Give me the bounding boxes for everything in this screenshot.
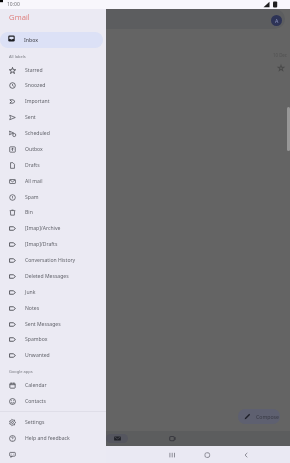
staticText: Settings bbox=[25, 419, 45, 426]
button[interactable]: Calendar bbox=[0, 377, 106, 393]
button[interactable]: All mail bbox=[0, 173, 106, 189]
staticText: Sent bbox=[25, 114, 36, 121]
button[interactable]: Recents bbox=[167, 450, 177, 460]
button[interactable]: Junk bbox=[0, 284, 106, 300]
button[interactable]: Snoozed bbox=[0, 77, 106, 93]
staticText: Contacts bbox=[25, 398, 46, 405]
button[interactable]: Starred bbox=[0, 62, 106, 78]
staticText: Compose bbox=[256, 413, 280, 420]
button[interactable]: Mail bbox=[106, 434, 128, 443]
button[interactable]: Spambox bbox=[0, 331, 106, 347]
button[interactable]: Search in mail bbox=[6, 9, 285, 29]
button[interactable]: Compose bbox=[238, 409, 280, 424]
staticText: All mail bbox=[25, 178, 43, 185]
button[interactable]: Sent Messages bbox=[0, 316, 106, 332]
staticText: Google apps bbox=[9, 369, 33, 374]
button[interactable]: Bin bbox=[0, 204, 106, 220]
button[interactable]: Important bbox=[0, 93, 106, 109]
button[interactable]: Settings bbox=[0, 414, 106, 430]
staticText: Spam bbox=[25, 194, 39, 201]
button[interactable]: Conversation History bbox=[0, 252, 106, 268]
button[interactable]: Home bbox=[202, 450, 212, 460]
staticText: A bbox=[275, 17, 279, 24]
button[interactable]: Inbox bbox=[0, 32, 103, 48]
staticText: Gmail bbox=[9, 12, 30, 23]
staticText: Sent Messages bbox=[25, 321, 61, 328]
staticText: Drafts bbox=[25, 162, 40, 169]
button[interactable]: Unwanted bbox=[0, 347, 106, 363]
button[interactable]: Contacts bbox=[0, 393, 106, 409]
button[interactable]: Drafts bbox=[0, 157, 106, 173]
staticText: [Imap]/Drafts bbox=[25, 241, 58, 248]
staticText: Important bbox=[25, 98, 50, 105]
staticText: Junk bbox=[25, 289, 36, 296]
button[interactable]: Account bbox=[271, 15, 282, 26]
button[interactable]: Send feedback bbox=[0, 446, 106, 462]
staticText: 10:00 bbox=[7, 1, 20, 8]
staticText: Starred bbox=[25, 67, 43, 74]
staticText: Calendar bbox=[25, 382, 47, 389]
staticText: Inbox bbox=[24, 37, 38, 44]
staticText: Notes bbox=[25, 305, 40, 312]
button[interactable]: Deleted Messages bbox=[0, 268, 106, 284]
button[interactable]: Spam bbox=[0, 189, 106, 205]
button[interactable]: Help and feedback bbox=[0, 430, 106, 446]
staticText: Spambox bbox=[25, 336, 48, 343]
staticText: Help and feedback bbox=[25, 435, 70, 442]
button[interactable]: [Imap]/Archive bbox=[0, 220, 106, 236]
button[interactable]: Meet bbox=[161, 434, 183, 443]
staticText: Conversation History bbox=[25, 257, 76, 264]
button[interactable]: Notes bbox=[0, 300, 106, 316]
staticText: [Imap]/Archive bbox=[25, 225, 61, 232]
button[interactable]: Back bbox=[241, 450, 251, 460]
staticText: Deleted Messages bbox=[25, 273, 69, 280]
staticText: Bin bbox=[25, 209, 33, 216]
staticText: All labels bbox=[9, 54, 26, 59]
button[interactable]: Outbox bbox=[0, 141, 106, 157]
staticText: Scheduled bbox=[25, 130, 50, 137]
staticText: Unwanted bbox=[25, 352, 50, 359]
staticText: 10 Dec bbox=[273, 52, 287, 58]
button[interactable]: Sent bbox=[0, 109, 106, 125]
button[interactable]: [Imap]/Drafts bbox=[0, 236, 106, 252]
staticText: Outbox bbox=[25, 146, 43, 153]
button[interactable]: Scheduled bbox=[0, 125, 106, 141]
staticText: Snoozed bbox=[25, 82, 46, 89]
